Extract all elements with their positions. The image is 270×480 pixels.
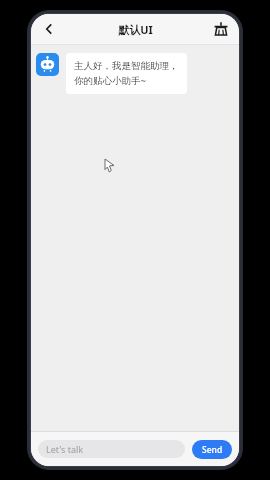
staticText: 默认UI bbox=[118, 22, 153, 37]
button[interactable]: Let's talk bbox=[38, 440, 185, 458]
button[interactable]: 主人好，我是智能助理， 你的贴心小助手~ bbox=[66, 53, 187, 94]
button[interactable]: Clear conversation bbox=[208, 16, 234, 42]
staticText: Let's talk bbox=[46, 443, 84, 455]
button[interactable]: Send bbox=[192, 440, 232, 459]
staticText: Send bbox=[202, 444, 223, 456]
staticText: 主人好，我是智能助理， 你的贴心小助手~ bbox=[74, 60, 179, 87]
button[interactable]: Back bbox=[35, 15, 63, 43]
button[interactable]: Assistant avatar bbox=[36, 53, 59, 76]
